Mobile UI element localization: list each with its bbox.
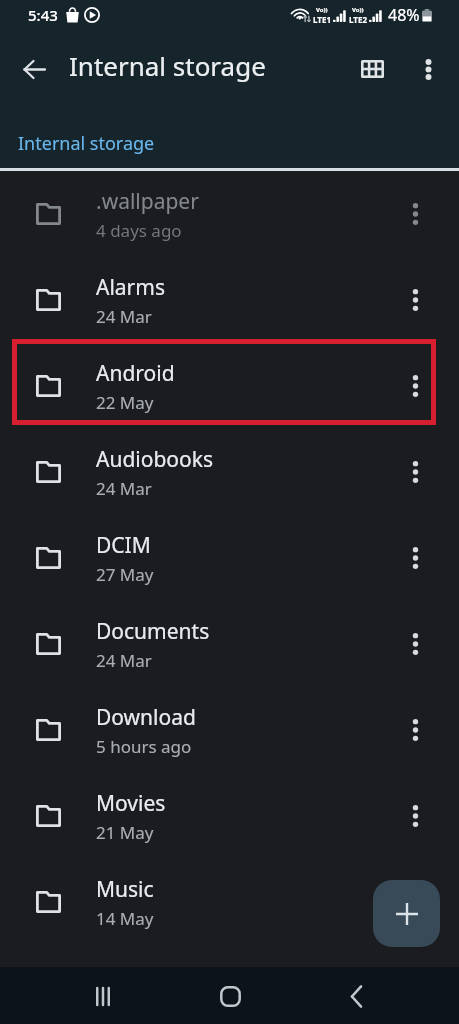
staticText: 24 Mar [96, 649, 152, 672]
button[interactable]: Documents [0, 601, 459, 687]
button[interactable]: More options for Music [392, 879, 438, 925]
staticText: 5:43 [28, 5, 58, 25]
staticText: Vo)) [352, 6, 364, 14]
staticText: 24 Mar [96, 477, 152, 500]
staticText: Music [96, 875, 154, 904]
staticText: Movies [96, 789, 166, 818]
button[interactable]: Home [206, 972, 254, 1020]
button[interactable]: Internal storage [18, 131, 155, 156]
button[interactable]: Add [373, 880, 440, 947]
staticText: 21 May [96, 821, 154, 844]
staticText: Internal storage [69, 48, 266, 83]
staticText: 22 May [96, 391, 154, 414]
staticText: DCIM [96, 531, 151, 560]
button[interactable]: More options for Documents [392, 621, 438, 667]
staticText: .wallpaper [96, 187, 199, 216]
staticText: LTE1 [313, 14, 331, 25]
staticText: Download [96, 703, 196, 732]
button[interactable]: More options [405, 46, 451, 92]
button[interactable]: DCIM [0, 515, 459, 601]
staticText: 4 days ago [96, 219, 182, 242]
button[interactable]: Grid view [349, 46, 395, 92]
staticText: 14 May [96, 907, 154, 930]
button[interactable]: More options for Download [392, 707, 438, 753]
button[interactable]: Alarms [0, 257, 459, 343]
staticText: Android [96, 359, 175, 388]
button[interactable]: More options for Audiobooks [392, 449, 438, 495]
button[interactable]: Download [0, 687, 459, 773]
button[interactable]: More options for Android [392, 363, 438, 409]
staticText: LTE2 [349, 14, 367, 25]
button[interactable]: More options for Alarms [392, 277, 438, 323]
staticText: Audiobooks [96, 445, 214, 474]
staticText: Alarms [96, 273, 165, 302]
staticText: 5 hours ago [96, 735, 192, 758]
button[interactable]: More options for .wallpaper [392, 191, 438, 237]
button[interactable]: Music [0, 859, 459, 945]
button[interactable]: Android [0, 343, 459, 429]
button[interactable]: Movies [0, 773, 459, 859]
button[interactable]: Back [332, 972, 380, 1020]
button[interactable]: Recents [79, 972, 127, 1020]
button[interactable]: .wallpaper [0, 171, 459, 257]
staticText: 24 Mar [96, 305, 152, 328]
button[interactable]: Notifications [0, 945, 459, 967]
staticText: Internal storage [18, 131, 155, 156]
button[interactable]: More options for Movies [392, 793, 438, 839]
staticText: 27 May [96, 563, 154, 586]
staticText: Vo)) [316, 6, 328, 14]
staticText: Documents [96, 617, 210, 646]
staticText: 48% [388, 4, 420, 26]
button[interactable]: More options for DCIM [392, 535, 438, 581]
button[interactable]: Audiobooks [0, 429, 459, 515]
button[interactable]: Back [11, 46, 57, 92]
